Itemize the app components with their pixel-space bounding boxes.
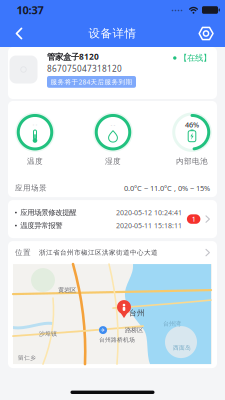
staticText: - -: [110, 121, 115, 129]
staticText: 设备详情: [88, 26, 136, 41]
staticText: 867075047318120: [47, 63, 122, 74]
button[interactable]: 返回: [4, 20, 34, 47]
staticText: 浙江省台州市椒江区洪家街道中心大道: [39, 248, 158, 257]
staticText: 2020-05-12 10:24:41: [116, 208, 182, 217]
staticText: 台州路桥机场: [99, 336, 135, 343]
staticText: 服务将于284天后服务到期: [50, 77, 132, 86]
staticText: 温度: [27, 156, 43, 166]
staticText: 1: [192, 214, 196, 224]
staticText: 黄岩区: [58, 286, 76, 294]
staticText: - -: [32, 120, 37, 128]
staticText: 温度异常报警: [20, 221, 62, 230]
staticText: 内部电池: [176, 156, 208, 166]
staticText: 路桥区: [125, 326, 143, 334]
button[interactable]: 设置: [191, 20, 221, 47]
staticText: 应用场景: [15, 183, 47, 193]
staticText: 46%: [185, 120, 199, 129]
button[interactable]: 应用场景修改提醒: [8, 200, 217, 238]
staticText: 位置: [15, 248, 31, 257]
staticText: 台州: [129, 308, 145, 318]
staticText: 应用场景修改提醒: [20, 208, 76, 217]
staticText: 10:37: [16, 2, 43, 17]
staticText: ✈: [100, 327, 105, 333]
staticText: 沙埠镇: [39, 330, 57, 338]
staticText: 西面岛: [173, 344, 191, 351]
staticText: 【在线】: [179, 53, 211, 63]
staticText: 湿度: [105, 156, 121, 166]
staticText: 0.0°C ~ 11.0°C , 0% ~ 15%: [124, 183, 210, 193]
button[interactable]: 位置: [8, 241, 217, 264]
staticText: 管家盒子8120: [47, 51, 99, 62]
staticText: 留仁乡: [18, 354, 36, 361]
staticText: 台州湾: [163, 320, 181, 328]
staticText: 2020-05-11 15:18:11: [116, 221, 182, 230]
